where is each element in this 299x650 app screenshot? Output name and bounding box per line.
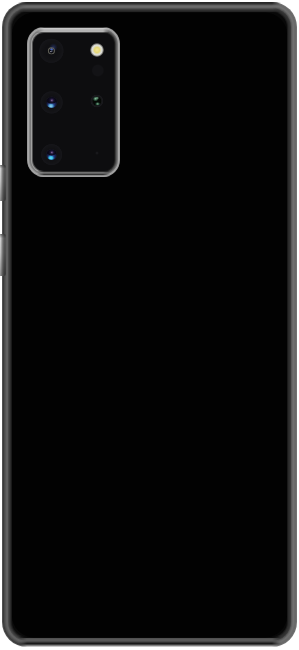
button[interactable]: Phone back view [0,0,299,650]
